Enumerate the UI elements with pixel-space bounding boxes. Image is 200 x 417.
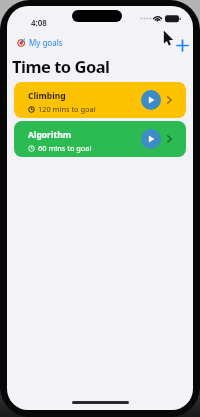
button[interactable]: Algorithm	[14, 121, 186, 157]
staticText: Time to Goal	[12, 55, 110, 77]
staticText: Algorithm	[28, 129, 71, 141]
staticText: My goals	[29, 37, 63, 48]
staticText: 120 mins to goal	[38, 104, 96, 114]
staticText: Climbing	[28, 90, 66, 102]
button[interactable]	[172, 35, 192, 55]
button[interactable]: My goals	[17, 37, 63, 48]
button[interactable]: Climbing	[14, 82, 186, 118]
staticText: 60 mins to goal	[38, 143, 92, 153]
staticText: 4:08	[31, 17, 47, 28]
button[interactable]	[141, 90, 161, 110]
button[interactable]	[141, 129, 161, 149]
